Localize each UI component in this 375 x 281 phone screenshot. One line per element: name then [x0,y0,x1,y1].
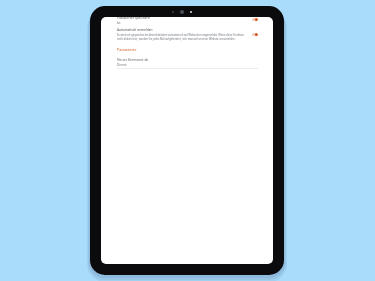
staticText: Dienst [117,63,127,67]
staticText: Es wird mit gespeicherten Anmeldedaten a… [117,33,244,37]
button[interactable]: Passwörter [117,47,137,52]
staticText: An [117,21,121,25]
staticText: nicht aktiviert ist, werden Sie jedes Ma… [117,37,236,41]
staticText: Automatisch anmelden [117,28,153,32]
button[interactable]: Einstellung umschalten: Passwörter speic… [252,18,258,21]
button[interactable]: Neues Kennwort ab [117,57,258,69]
staticText: Neues Kennwort ab [117,57,149,62]
staticText: Passwörter [117,47,137,52]
button[interactable]: Passwörter speichern [117,17,258,25]
button[interactable]: Einstellung umschalten: Automatisch anme… [252,33,258,36]
button[interactable]: Automatisch anmelden [117,28,258,41]
staticText: Passwörter speichern [117,17,150,20]
